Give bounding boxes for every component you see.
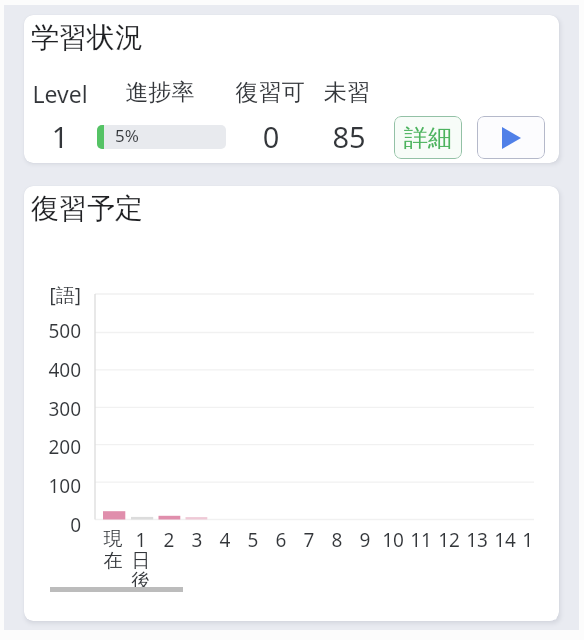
staticText: 9 (340, 527, 390, 553)
staticText: 14 (480, 527, 530, 553)
staticText: 13 (452, 527, 502, 553)
staticText: 15 (508, 527, 534, 553)
button[interactable]: Play (477, 116, 545, 159)
staticText: 後 (116, 569, 166, 593)
staticText: 5 (228, 527, 278, 553)
staticText: 1 (116, 527, 166, 553)
staticText: 現 (88, 527, 138, 551)
staticText: 未習 (277, 78, 417, 107)
staticText: 12 (424, 527, 474, 553)
staticText: 日 (116, 549, 166, 573)
staticText: 7 (284, 527, 334, 553)
staticText: [語] (24, 282, 81, 308)
staticText: 300 (24, 396, 81, 422)
staticText: 500 (24, 318, 81, 344)
staticText: 2 (144, 527, 194, 553)
staticText: 6 (256, 527, 306, 553)
staticText: 200 (24, 434, 81, 460)
staticText: Level (24, 78, 130, 109)
staticText: 学習状況 (31, 20, 143, 55)
staticText: 在 (88, 549, 138, 573)
staticText: 8 (312, 527, 362, 553)
staticText: 0 (24, 512, 81, 538)
staticText: 85 (279, 117, 419, 156)
staticText: 5% (115, 125, 139, 147)
staticText: 復習予定 (31, 191, 143, 226)
staticText: 1 (24, 117, 130, 156)
staticText: 4 (200, 527, 250, 553)
staticText: 10 (368, 527, 418, 553)
staticText: 進捗率 (90, 78, 230, 107)
staticText: 100 (24, 473, 81, 499)
staticText: 11 (396, 527, 446, 553)
staticText: 復習可 (200, 78, 340, 107)
staticText: 3 (172, 527, 222, 553)
staticText: 詳細 (404, 123, 452, 153)
staticText: 0 (201, 117, 341, 156)
staticText: 400 (24, 357, 81, 383)
button[interactable]: 詳細 (394, 116, 462, 159)
